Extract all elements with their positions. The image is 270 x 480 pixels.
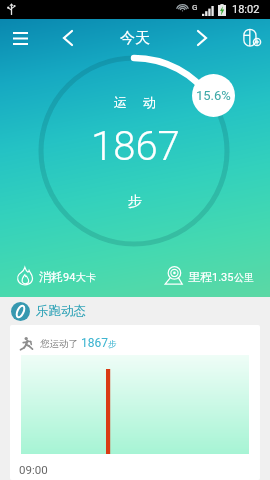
staticText: 公里 [234, 271, 254, 284]
staticText: 今天 [120, 29, 150, 48]
staticText: 里程 [188, 269, 212, 284]
button[interactable]: 今天 [120, 29, 150, 48]
button[interactable]: 您运动了 [10, 325, 260, 480]
staticText: 15.6% [196, 88, 231, 103]
staticText: 您运动了 [40, 338, 78, 350]
button[interactable]: Previous day [52, 22, 84, 54]
staticText: 94 [63, 271, 76, 284]
staticText: 大卡 [76, 271, 96, 284]
staticText: 1867 [91, 123, 180, 170]
staticText: 1.35 [212, 271, 234, 284]
button[interactable]: Menu [0, 19, 40, 57]
staticText: 1867 [81, 336, 108, 350]
staticText: 18:02 [232, 3, 260, 16]
staticText: 运动 [106, 94, 164, 110]
button[interactable]: 消耗 [15, 267, 96, 285]
staticText: 步 [128, 193, 142, 211]
button[interactable]: 里程 [164, 267, 254, 285]
staticText: 09:00 [19, 463, 48, 476]
button[interactable]: Add device [234, 20, 270, 56]
button[interactable]: Next day [186, 22, 218, 54]
staticText: G [192, 3, 198, 12]
staticText: 步 [108, 339, 117, 350]
staticText: 乐跑动态 [36, 303, 86, 319]
staticText: 消耗 [39, 269, 63, 284]
